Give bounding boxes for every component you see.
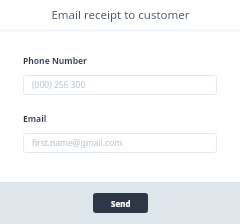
button[interactable]: first.name@gmail.com	[23, 133, 217, 153]
staticText: Email receipt to customer	[51, 7, 190, 23]
button[interactable]: Send	[93, 193, 148, 213]
staticText: Send	[111, 198, 131, 209]
button[interactable]: (000) 256 300	[23, 75, 217, 95]
staticText: Phone Number	[23, 55, 87, 67]
staticText: first.name@gmail.com	[32, 137, 123, 149]
staticText: (000) 256 300	[32, 79, 86, 91]
staticText: Email	[23, 113, 47, 125]
